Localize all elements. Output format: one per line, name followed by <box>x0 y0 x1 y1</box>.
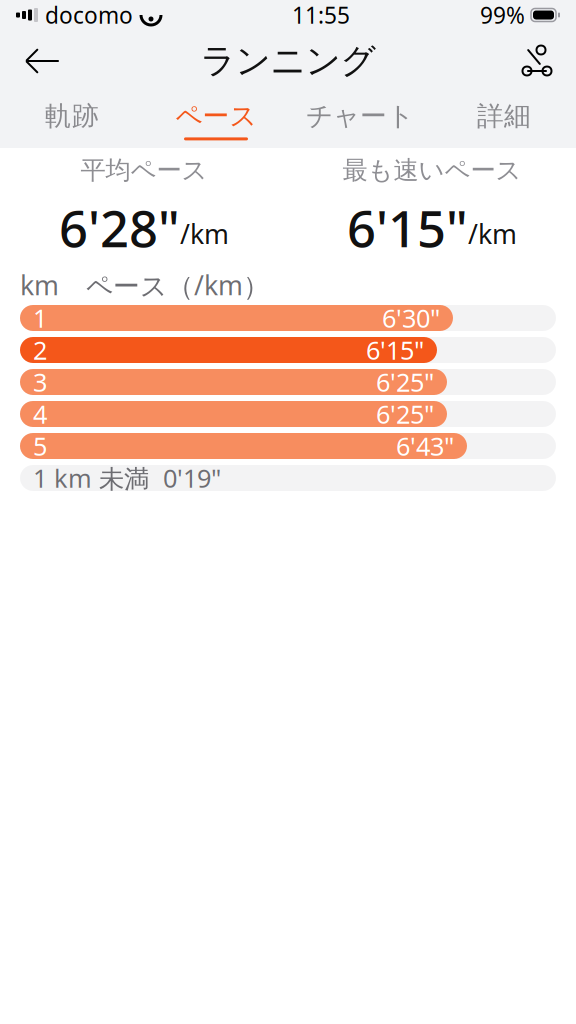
staticText: km ペース（/km） <box>20 267 270 303</box>
staticText: 2 <box>33 333 47 367</box>
staticText: ペース <box>175 100 256 132</box>
staticText: 6'15" <box>366 333 424 367</box>
staticText: 4 <box>33 397 47 431</box>
staticText: 平均ペース <box>80 155 207 186</box>
staticText: チャート <box>306 100 414 132</box>
button[interactable]: 軌跡 <box>0 92 144 148</box>
staticText: /km <box>180 216 229 251</box>
staticText: 最も速いペース <box>342 155 521 186</box>
staticText: docomo <box>45 0 133 30</box>
button[interactable]: ペース <box>144 92 288 148</box>
staticText: 詳細 <box>477 100 531 132</box>
staticText: 1 km 未満 0'19" <box>33 461 221 495</box>
staticText: 軌跡 <box>45 100 99 132</box>
staticText: 6'28" <box>59 194 180 261</box>
staticText: ランニング <box>200 40 375 82</box>
staticText: /km <box>468 216 517 251</box>
button[interactable]: 共有 <box>498 33 568 89</box>
staticText: 6'43" <box>396 429 454 463</box>
staticText: 11:55 <box>292 0 350 30</box>
staticText: 6'15" <box>347 194 468 261</box>
staticText: 6'25" <box>376 397 434 431</box>
staticText: 3 <box>33 365 47 399</box>
staticText: 5 <box>33 429 47 463</box>
button[interactable]: チャート <box>288 92 432 148</box>
staticText: 99% <box>480 0 525 30</box>
button[interactable]: 戻る <box>8 33 78 89</box>
staticText: 6'25" <box>376 365 434 399</box>
staticText: 6'30" <box>382 301 440 335</box>
button[interactable]: 詳細 <box>432 92 576 148</box>
staticText: 1 <box>33 301 47 335</box>
